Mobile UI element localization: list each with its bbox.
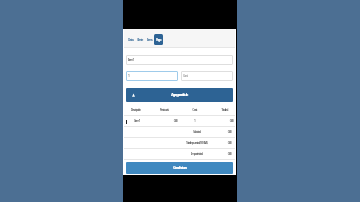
- staticText: Cant.: [182, 108, 207, 112]
- staticText: Item 1: [129, 119, 145, 123]
- staticText: Crear factura: [173, 165, 187, 171]
- button[interactable]: Cant.: [183, 71, 231, 81]
- staticText: 0.00: [211, 152, 231, 156]
- other: Expand: [132, 93, 135, 97]
- staticText: Importe total: [164, 152, 229, 156]
- button[interactable]: Items: [147, 34, 153, 45]
- staticText: Total impuestos (16% IVA): [164, 141, 229, 145]
- staticText: Cant.: [183, 74, 188, 78]
- staticText: Datos: [128, 38, 134, 42]
- button[interactable]: Item 1: [128, 55, 231, 65]
- staticText: 0.00: [213, 119, 233, 123]
- button[interactable]: Datos: [128, 34, 134, 45]
- staticText: Precio unit.: [150, 108, 178, 112]
- staticText: Items: [147, 38, 153, 42]
- staticText: 1: [182, 119, 207, 123]
- button[interactable]: Pago: [156, 34, 161, 45]
- staticText: 0.00: [211, 130, 231, 134]
- button[interactable]: Crear factura: [126, 162, 233, 174]
- staticText: Item 1: [128, 58, 134, 62]
- staticText: Agregar artículo: [171, 92, 188, 98]
- button[interactable]: Agregar artículo: [126, 88, 233, 102]
- staticText: Descripción: [125, 108, 146, 112]
- staticText: 0.00: [211, 141, 231, 145]
- button[interactable]: 1: [128, 71, 176, 81]
- staticText: Pago: [156, 38, 161, 42]
- staticText: Total incl.: [215, 108, 234, 112]
- staticText: Subtotal: [164, 130, 229, 134]
- staticText: Cliente: [137, 38, 143, 42]
- button[interactable]: Cliente: [137, 34, 143, 45]
- staticText: 0.00: [150, 119, 177, 123]
- staticText: 1: [128, 74, 130, 78]
